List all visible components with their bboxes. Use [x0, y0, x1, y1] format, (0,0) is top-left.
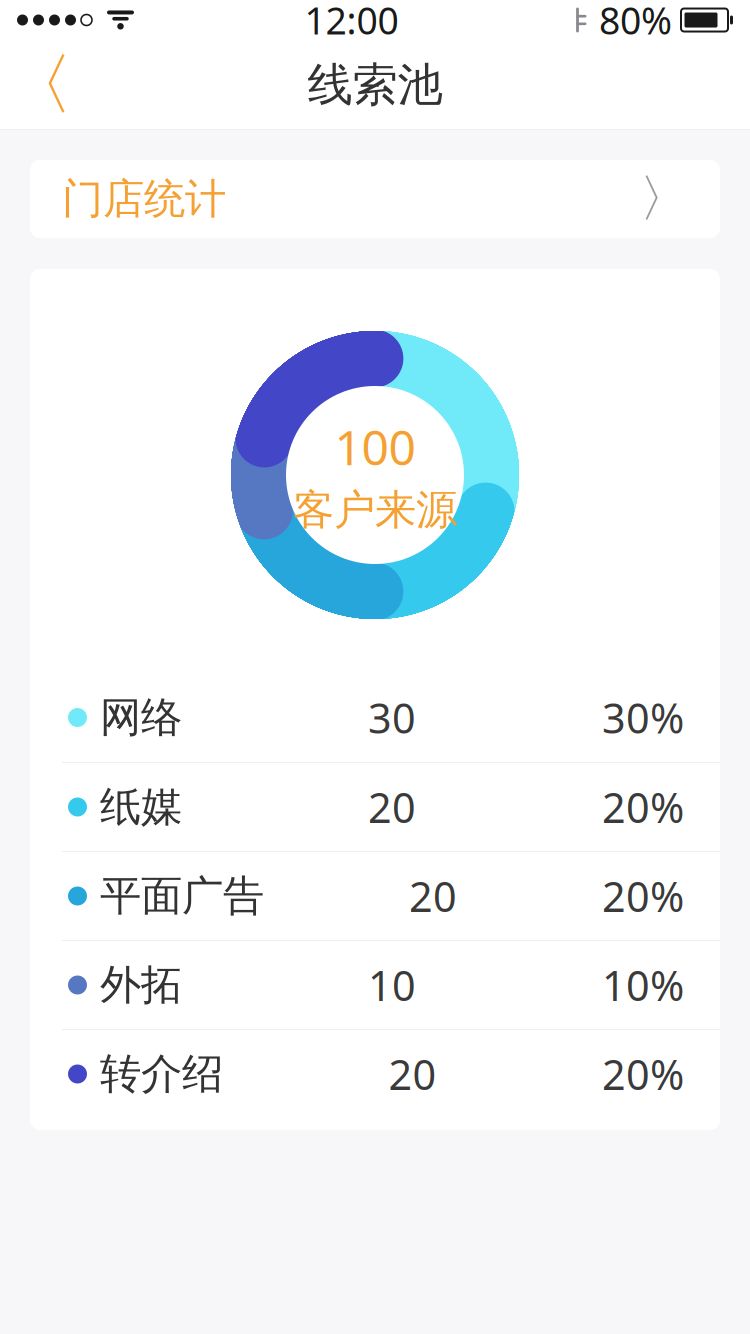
staticText: 外拓 [100, 960, 182, 1010]
staticText: 平面广告 [100, 871, 264, 921]
staticText: 〉 [639, 168, 690, 230]
staticText: 20% [602, 780, 684, 834]
staticText: 20% [602, 869, 684, 923]
staticText: 30 [368, 690, 416, 745]
staticText: 转介绍 [100, 1049, 223, 1099]
staticText: 20% [602, 1047, 684, 1101]
staticText: 客户来源 [293, 484, 457, 535]
staticText: 80% [599, 0, 672, 45]
staticText: 10% [602, 958, 684, 1012]
staticText: 20 [409, 869, 457, 923]
staticText: 网络 [100, 692, 182, 743]
staticText: 30% [602, 690, 684, 745]
staticText: 20 [368, 780, 416, 834]
staticText: 线索池 [307, 57, 442, 113]
staticText: 〈 [6, 44, 73, 126]
staticText: 10 [368, 958, 416, 1012]
button[interactable]: 门店统计 [30, 160, 720, 238]
staticText: 20 [388, 1047, 436, 1101]
button[interactable]: 返回 [0, 40, 80, 130]
staticText: 门店统计 [62, 174, 226, 224]
staticText: 纸媒 [100, 782, 182, 832]
staticText: 100 [334, 415, 415, 478]
staticText: 12:00 [304, 0, 398, 45]
